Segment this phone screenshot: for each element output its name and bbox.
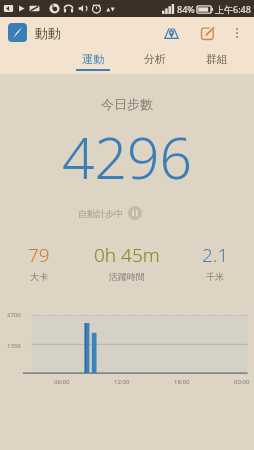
staticText: 大卡 [30,271,48,282]
staticText: 00:00 [234,378,250,386]
other: Pause [128,206,142,220]
staticText: 群組 [206,52,228,66]
staticText: 79 [28,242,50,268]
staticText: 今日步數 [0,96,254,112]
staticText: 動動 [35,25,61,41]
button[interactable]: Step chart [0,304,254,400]
staticText: 2.1 [202,242,229,268]
staticText: 84% [177,3,195,15]
button[interactable]: Map [158,20,184,46]
staticText: 上午6:48 [215,3,251,15]
button[interactable]: 分析 [134,52,176,71]
staticText: 千米 [206,271,224,282]
staticText: 1350 [7,342,21,350]
button[interactable]: 79 [0,242,78,282]
button[interactable]: 2.1 [176,242,254,282]
button[interactable]: App icon [8,23,27,42]
button[interactable]: 自動計步中 [78,206,254,220]
button[interactable]: Edit [194,20,220,46]
button[interactable]: More options [224,20,250,46]
staticText: 06:00 [54,378,70,386]
staticText: 0h 45m [94,242,160,268]
staticText: 運動 [82,52,104,66]
staticText: 4296 [0,118,254,196]
staticText: 18:00 [174,378,190,386]
button[interactable]: 群組 [196,52,238,71]
staticText: 活躍時間 [109,271,145,282]
button[interactable]: 0h 45m [78,242,176,282]
staticText: 分析 [144,52,166,66]
staticText: 自動計步中 [78,208,123,219]
button[interactable]: 運動 [72,52,114,71]
staticText: 12:00 [114,378,130,386]
staticText: 2700 [7,311,21,319]
